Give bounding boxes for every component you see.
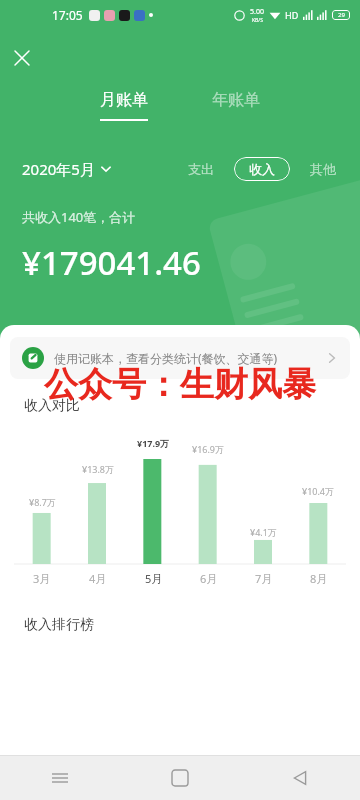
button[interactable]: Home (120, 756, 240, 800)
staticText: 共收入140笔，合计 (22, 208, 136, 226)
staticText: ¥4.1万 (250, 526, 277, 538)
staticText: 4月 (89, 571, 107, 586)
staticText: 月账单 (100, 90, 148, 110)
staticText: 5.00 (250, 7, 264, 17)
button[interactable]: 其他 (304, 156, 342, 182)
staticText: ¥17.9万 (137, 437, 170, 449)
staticText: 收入 (249, 161, 275, 177)
staticText: HD (285, 9, 299, 21)
staticText: ¥16.9万 (192, 443, 225, 455)
staticText: 收入排行榜 (24, 616, 94, 634)
staticText: 6月 (200, 571, 218, 586)
staticText: 8月 (310, 571, 328, 586)
button[interactable]: 月账单 (94, 88, 154, 123)
button[interactable]: Recents (0, 756, 120, 800)
staticText: 7月 (255, 571, 273, 586)
button[interactable]: Close (8, 44, 36, 72)
staticText: 使用记账本，查看分类统计(餐饮、交通等) (54, 350, 318, 366)
button[interactable]: 使用记账本，查看分类统计(餐饮、交通等) (10, 337, 350, 379)
staticText: 5月 (145, 571, 163, 586)
staticText: 29 (338, 11, 345, 19)
staticText: ¥10.4万 (302, 485, 335, 497)
button[interactable]: Back (240, 756, 360, 800)
staticText: ¥13.8万 (82, 463, 115, 475)
button[interactable]: 支出 (182, 156, 220, 182)
staticText: 年账单 (212, 90, 260, 110)
button[interactable]: 年账单 (206, 88, 266, 123)
staticText: 3月 (33, 571, 51, 586)
button[interactable]: 2020年5月 (22, 155, 112, 183)
staticText: 2020年5月 (22, 159, 95, 179)
staticText: ¥179041.46 (22, 240, 201, 285)
staticText: 收入对比 (24, 397, 80, 415)
button[interactable]: 收入 (234, 157, 290, 181)
staticText: ¥8.7万 (29, 496, 56, 508)
staticText: KB/S (252, 17, 263, 24)
staticText: 公众号：生财风暴 (44, 363, 316, 406)
staticText: 17:05 (52, 7, 83, 23)
